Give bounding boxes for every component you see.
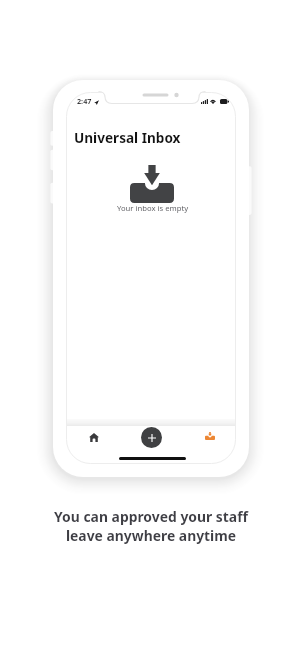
staticText: Your inbox is empty (117, 203, 189, 213)
staticText: 2:47 (77, 96, 92, 106)
staticText: Universal Inbox (74, 128, 181, 147)
button[interactable]: Inbox (194, 422, 226, 450)
button[interactable]: Add (141, 427, 162, 448)
button[interactable]: Home (78, 424, 110, 452)
staticText: You can approved your staff leave anywhe… (54, 507, 248, 545)
